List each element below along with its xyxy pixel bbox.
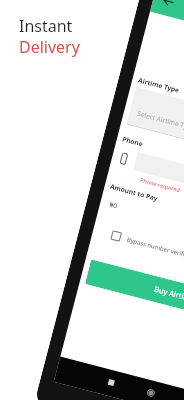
staticText: Buy Airtime	[153, 284, 184, 304]
staticText: Amount to Pay	[109, 182, 159, 203]
staticText: ₦0	[109, 200, 119, 210]
button[interactable]: Back	[160, 0, 177, 10]
button[interactable]: Select Airtime Type	[126, 87, 184, 169]
button[interactable]: Back	[150, 0, 184, 59]
button[interactable]	[133, 152, 184, 210]
button[interactable]: Buy Airtime	[85, 259, 184, 329]
staticText: Delivery	[19, 36, 80, 58]
staticText: Select Airtime Type	[136, 109, 184, 132]
staticText: Bypass number verification	[126, 235, 184, 262]
staticText: Phone required	[139, 176, 181, 194]
staticText: Airtime Type	[137, 75, 180, 95]
button[interactable]: Bypass number verification	[110, 227, 184, 264]
staticText: Instant	[19, 15, 73, 37]
staticText: Phone	[121, 134, 144, 148]
